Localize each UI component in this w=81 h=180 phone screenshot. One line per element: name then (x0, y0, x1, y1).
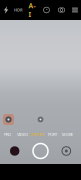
staticText: PRO (4, 132, 11, 137)
button[interactable]: VIDEO (15, 131, 30, 138)
button[interactable]: Timer (39, 0, 54, 20)
staticText: PORT (48, 132, 57, 137)
button[interactable]: More options (69, 0, 81, 20)
staticText: VIDEO (17, 132, 28, 137)
button[interactable]: Shutter (33, 143, 48, 158)
button[interactable]: PORT (45, 131, 60, 138)
button[interactable]: Filters (54, 0, 69, 20)
button[interactable]: Gallery (10, 146, 19, 156)
staticText: AI (28, 1, 35, 19)
button[interactable]: Zoom (35, 114, 46, 124)
button[interactable]: PRO (0, 131, 15, 138)
button[interactable]: MORE (60, 131, 75, 138)
button[interactable]: PHOTO (30, 131, 45, 138)
button[interactable]: AI scene detection (25, 0, 39, 20)
staticText: MORE (62, 132, 73, 137)
staticText: PHOTO (31, 132, 44, 137)
button[interactable]: HDR (12, 0, 25, 20)
staticText: HDR (14, 7, 23, 13)
button[interactable]: Switch camera (62, 146, 71, 156)
button[interactable]: Lens (3, 114, 14, 125)
button[interactable]: Flash (0, 0, 12, 20)
